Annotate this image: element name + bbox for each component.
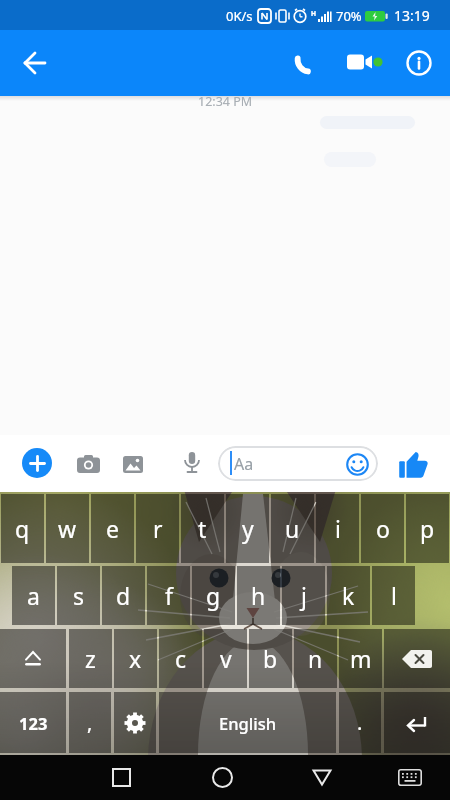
button[interactable] bbox=[72, 448, 104, 480]
staticText: v bbox=[220, 643, 232, 674]
staticText: y bbox=[242, 513, 254, 544]
staticText: n bbox=[308, 643, 323, 674]
staticText: h bbox=[251, 580, 266, 611]
button[interactable]: 123 bbox=[0, 692, 66, 753]
button[interactable]: i bbox=[316, 494, 359, 563]
button[interactable] bbox=[342, 40, 388, 86]
button[interactable] bbox=[114, 692, 156, 753]
staticText: w bbox=[58, 513, 77, 544]
staticText: k bbox=[342, 580, 355, 611]
button[interactable]: y bbox=[226, 494, 269, 563]
button[interactable]: , bbox=[69, 692, 111, 753]
button[interactable]: c bbox=[159, 629, 202, 688]
staticText: e bbox=[106, 513, 119, 544]
staticText: u bbox=[285, 513, 300, 544]
staticText: 70% bbox=[336, 7, 362, 25]
button[interactable]: t bbox=[181, 494, 224, 563]
button[interactable] bbox=[302, 757, 342, 797]
button[interactable]: h bbox=[237, 566, 280, 625]
staticText: , bbox=[87, 709, 93, 736]
staticText: j bbox=[301, 580, 307, 611]
staticText: m bbox=[350, 643, 372, 674]
button[interactable] bbox=[284, 41, 328, 85]
button[interactable]: j bbox=[282, 566, 325, 625]
staticText: b bbox=[263, 643, 278, 674]
staticText: 123 bbox=[19, 712, 48, 734]
button[interactable] bbox=[176, 447, 208, 479]
button[interactable] bbox=[22, 448, 52, 478]
staticText: p bbox=[420, 513, 435, 544]
button[interactable]: b bbox=[249, 629, 292, 688]
staticText: Aa bbox=[234, 453, 254, 475]
button[interactable] bbox=[392, 759, 428, 795]
button[interactable]: z bbox=[69, 629, 112, 688]
button[interactable]: s bbox=[57, 566, 100, 625]
button[interactable] bbox=[395, 446, 431, 482]
staticText: l bbox=[391, 580, 397, 611]
button[interactable]: f bbox=[147, 566, 190, 625]
staticText: i bbox=[335, 513, 341, 544]
staticText: x bbox=[129, 643, 142, 674]
staticText: s bbox=[73, 580, 85, 611]
button[interactable] bbox=[384, 692, 450, 753]
button[interactable]: English bbox=[159, 692, 336, 753]
staticText: z bbox=[85, 643, 96, 674]
button[interactable]: e bbox=[91, 494, 134, 563]
staticText: q bbox=[15, 513, 30, 544]
button[interactable]: x bbox=[114, 629, 157, 688]
button[interactable]: q bbox=[1, 494, 44, 563]
button[interactable] bbox=[202, 757, 242, 797]
staticText: f bbox=[165, 580, 173, 611]
staticText: a bbox=[27, 580, 40, 611]
button[interactable]: g bbox=[192, 566, 235, 625]
button[interactable]: o bbox=[361, 494, 404, 563]
staticText: d bbox=[116, 580, 131, 611]
staticText: 12:34 PM bbox=[198, 96, 253, 110]
staticText: c bbox=[175, 643, 187, 674]
button[interactable]: w bbox=[46, 494, 89, 563]
button[interactable] bbox=[0, 629, 66, 688]
staticText: o bbox=[376, 513, 390, 544]
button[interactable]: m bbox=[339, 629, 382, 688]
button[interactable]: Aa bbox=[218, 446, 378, 481]
staticText: t bbox=[198, 513, 207, 544]
staticText: . bbox=[357, 709, 363, 736]
button[interactable]: . bbox=[339, 692, 381, 753]
button[interactable] bbox=[396, 40, 442, 86]
button[interactable]: l bbox=[372, 566, 415, 625]
button[interactable]: k bbox=[327, 566, 370, 625]
button[interactable]: d bbox=[102, 566, 145, 625]
button[interactable] bbox=[384, 629, 450, 688]
staticText: 13:19 bbox=[394, 6, 430, 25]
button[interactable] bbox=[14, 42, 56, 84]
staticText: 0K/s bbox=[226, 7, 253, 25]
staticText: r bbox=[153, 513, 163, 544]
button[interactable]: p bbox=[406, 494, 449, 563]
button[interactable]: u bbox=[271, 494, 314, 563]
staticText: g bbox=[206, 580, 221, 611]
button[interactable]: r bbox=[136, 494, 179, 563]
button[interactable]: v bbox=[204, 629, 247, 688]
button[interactable]: a bbox=[12, 566, 55, 625]
button[interactable] bbox=[117, 448, 149, 480]
button[interactable]: n bbox=[294, 629, 337, 688]
button[interactable] bbox=[101, 757, 141, 797]
staticText: English bbox=[219, 712, 277, 734]
